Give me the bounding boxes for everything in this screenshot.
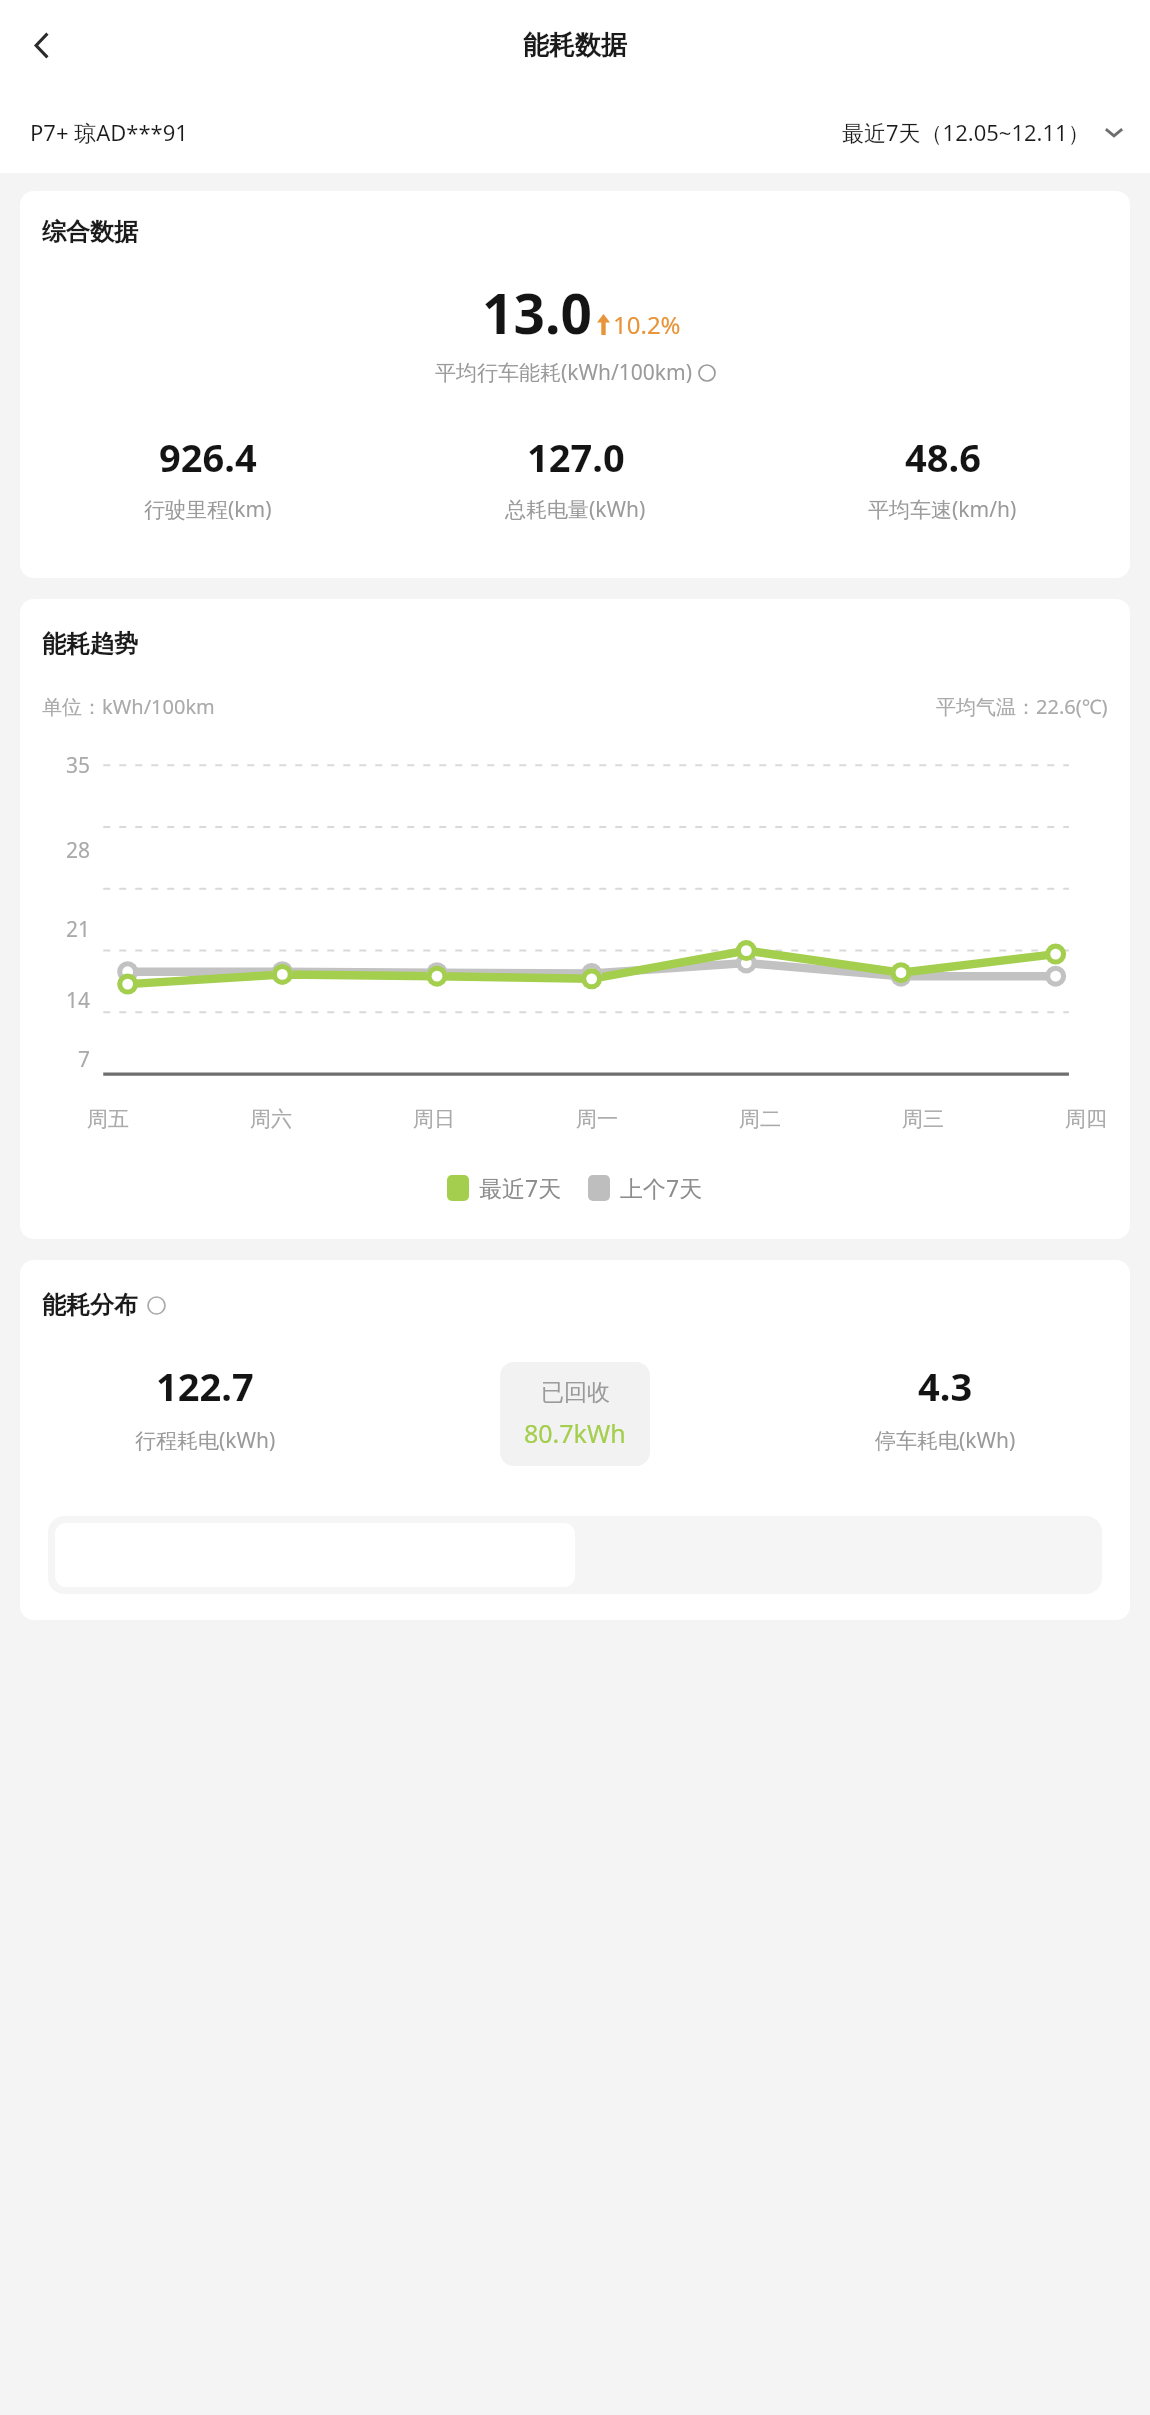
staticText: 行驶里程(km) <box>144 495 272 524</box>
staticText: 能耗趋势 <box>42 629 138 659</box>
staticText: 行程耗电(kWh) <box>135 1426 276 1455</box>
staticText: 平均气温：22.6(℃) <box>936 693 1108 720</box>
staticText: 13.0 <box>482 275 592 350</box>
staticText: 平均车速(km/h) <box>868 495 1017 524</box>
staticText: 周六 <box>241 1106 301 1132</box>
staticText: 总耗电量(kWh) <box>505 495 646 524</box>
staticText: 能耗数据 <box>523 29 627 62</box>
staticText: 能耗分布 <box>42 1290 138 1320</box>
staticText: 122.7 <box>156 1360 254 1412</box>
staticText: 停车耗电(kWh) <box>875 1426 1016 1455</box>
staticText: 周二 <box>730 1106 790 1132</box>
staticText: 4.3 <box>918 1360 973 1412</box>
staticText: 周四 <box>1056 1106 1116 1132</box>
staticText: 127.0 <box>527 431 625 483</box>
staticText: 926.4 <box>159 431 257 483</box>
staticText: 综合数据 <box>42 217 138 247</box>
button[interactable]: Back <box>12 16 70 74</box>
staticText: 28 <box>20 836 90 865</box>
staticText: 14 <box>20 986 90 1015</box>
staticText: 单位：kWh/100km <box>42 693 215 720</box>
staticText: 周五 <box>78 1106 138 1132</box>
staticText: 48.6 <box>905 431 981 483</box>
staticText: 周日 <box>404 1106 464 1132</box>
staticText: 平均行车能耗(kWh/100km) <box>435 358 693 387</box>
staticText: 21 <box>20 915 90 944</box>
staticText: 7 <box>20 1045 90 1074</box>
staticText: 已回收 <box>541 1378 610 1407</box>
staticText: 周三 <box>893 1106 953 1132</box>
staticText: 最近7天（12.05~12.11） <box>842 117 1090 147</box>
button[interactable]: 最近7天（12.05~12.11） <box>842 117 1126 147</box>
staticText: 最近7天 <box>479 1172 562 1203</box>
staticText: 10.2% <box>613 308 681 341</box>
staticText: 80.7kWh <box>524 1416 626 1450</box>
staticText: 周一 <box>567 1106 627 1132</box>
staticText: 上个7天 <box>620 1172 703 1203</box>
button[interactable]: P7+ 琼AD***91 <box>30 117 188 147</box>
staticText: 35 <box>20 751 90 780</box>
